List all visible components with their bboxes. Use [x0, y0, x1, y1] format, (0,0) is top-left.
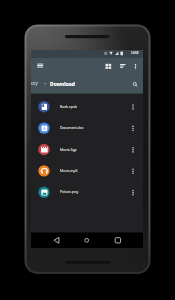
button[interactable]: Music.mp3	[31, 160, 143, 181]
button[interactable]: Breadcrumb: Download	[31, 78, 109, 92]
button[interactable]: More options for Picture.png	[126, 185, 141, 200]
button[interactable]: Book.epub	[31, 96, 143, 117]
staticText: Document.doc	[60, 125, 84, 130]
button[interactable]: Grid view	[101, 58, 117, 74]
button[interactable]: Movie.3gp	[31, 139, 143, 160]
button[interactable]: More options	[128, 58, 143, 74]
button[interactable]: More options for Movie.3gp	[126, 142, 141, 157]
button[interactable]: More options for Document.doc	[126, 121, 141, 136]
staticText: Music.mp3	[60, 168, 78, 173]
button[interactable]: Recent apps	[110, 233, 126, 248]
button[interactable]: Open navigation drawer	[33, 58, 49, 74]
button[interactable]: More options for Music.mp3	[126, 163, 141, 178]
button[interactable]: Picture.png	[31, 182, 143, 203]
button[interactable]: Sort	[115, 58, 130, 74]
button[interactable]: Home	[79, 233, 95, 248]
staticText: Download	[50, 81, 75, 88]
staticText: Movie.3gp	[60, 147, 77, 152]
staticText: Book.epub	[60, 104, 78, 109]
staticText: ory	[31, 80, 38, 86]
staticText: Picture.png	[60, 189, 79, 194]
button[interactable]: Search	[128, 77, 144, 93]
button[interactable]: More options for Book.epub	[126, 99, 141, 114]
button[interactable]: Document.doc	[31, 117, 143, 138]
button[interactable]: Back	[49, 233, 64, 248]
staticText: 16:58	[131, 51, 139, 55]
